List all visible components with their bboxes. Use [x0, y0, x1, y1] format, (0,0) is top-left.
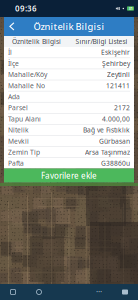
staticText: Parsel: [8, 103, 28, 112]
staticText: Zeytinli: [107, 70, 130, 79]
staticText: 09:36: [15, 3, 37, 14]
staticText: Arsa Taşınmaz: [85, 148, 130, 157]
staticText: İlçe: [8, 59, 19, 68]
staticText: İl: [8, 48, 12, 57]
button[interactable]: Sınır/Bilgi Listesi: [69, 36, 134, 47]
button[interactable]: Layers: [112, 284, 138, 300]
staticText: 121411: [106, 81, 130, 90]
staticText: Eskişehir: [101, 48, 130, 57]
staticText: Gürbasan: [99, 137, 130, 145]
staticText: Mevkii: [8, 137, 29, 145]
staticText: Mahalle/Köy: [8, 70, 47, 79]
staticText: ···: [96, 287, 102, 297]
staticText: Nitelik: [8, 125, 29, 134]
staticText: 4.000,00: [102, 114, 130, 123]
staticText: Bağ ve Fıstıklık: [83, 125, 130, 134]
staticText: 31: [128, 6, 132, 11]
staticText: Öznitelik Bilgisi: [12, 37, 61, 46]
staticText: Şehirbey: [102, 59, 130, 68]
staticText: Favorilere ekle: [41, 170, 97, 181]
staticText: 2172: [114, 103, 130, 112]
staticText: G38860u: [101, 159, 130, 168]
staticText: Tapu Alanı: [8, 114, 41, 123]
staticText: Öznitelik Bilgisi: [33, 20, 104, 33]
button[interactable]: More: [86, 284, 112, 300]
staticText: Zemin Tip: [8, 148, 40, 157]
button[interactable]: Favorilere ekle: [4, 168, 134, 182]
button[interactable]: Öznitelik Bilgisi: [4, 36, 69, 47]
button[interactable]: Recents: [0, 284, 26, 300]
button[interactable]: Back: [5, 17, 19, 36]
staticText: Pafta: [8, 159, 24, 168]
staticText: Mahalle No: [8, 81, 45, 90]
staticText: Sınır/Bilgi Listesi: [75, 37, 127, 46]
button[interactable]: Home: [26, 284, 52, 300]
staticText: Ada: [8, 92, 20, 101]
